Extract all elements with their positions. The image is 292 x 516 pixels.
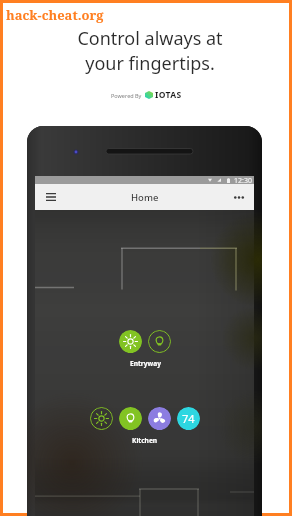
button[interactable]: Open navigation menu <box>35 184 66 210</box>
staticText: Entryway <box>130 359 161 368</box>
button[interactable]: Thermostat <box>177 407 200 430</box>
staticText: IOTAS <box>155 89 182 101</box>
button[interactable]: Brightness <box>90 407 113 430</box>
button[interactable]: Light <box>148 330 171 353</box>
button[interactable]: Light <box>119 407 142 430</box>
staticText: Home <box>131 191 159 204</box>
staticText: Powered By <box>111 92 142 99</box>
staticText: Control always at <box>77 26 223 51</box>
button[interactable]: Fan <box>148 407 171 430</box>
button[interactable]: More options <box>223 184 254 210</box>
staticText: hack-cheat.org <box>6 6 104 24</box>
staticText: Kitchen <box>132 436 158 445</box>
staticText: your fingertips. <box>85 51 215 76</box>
staticText: 12:30 <box>234 176 252 184</box>
button[interactable]: Brightness <box>119 330 142 353</box>
staticText: 74 <box>182 411 195 426</box>
